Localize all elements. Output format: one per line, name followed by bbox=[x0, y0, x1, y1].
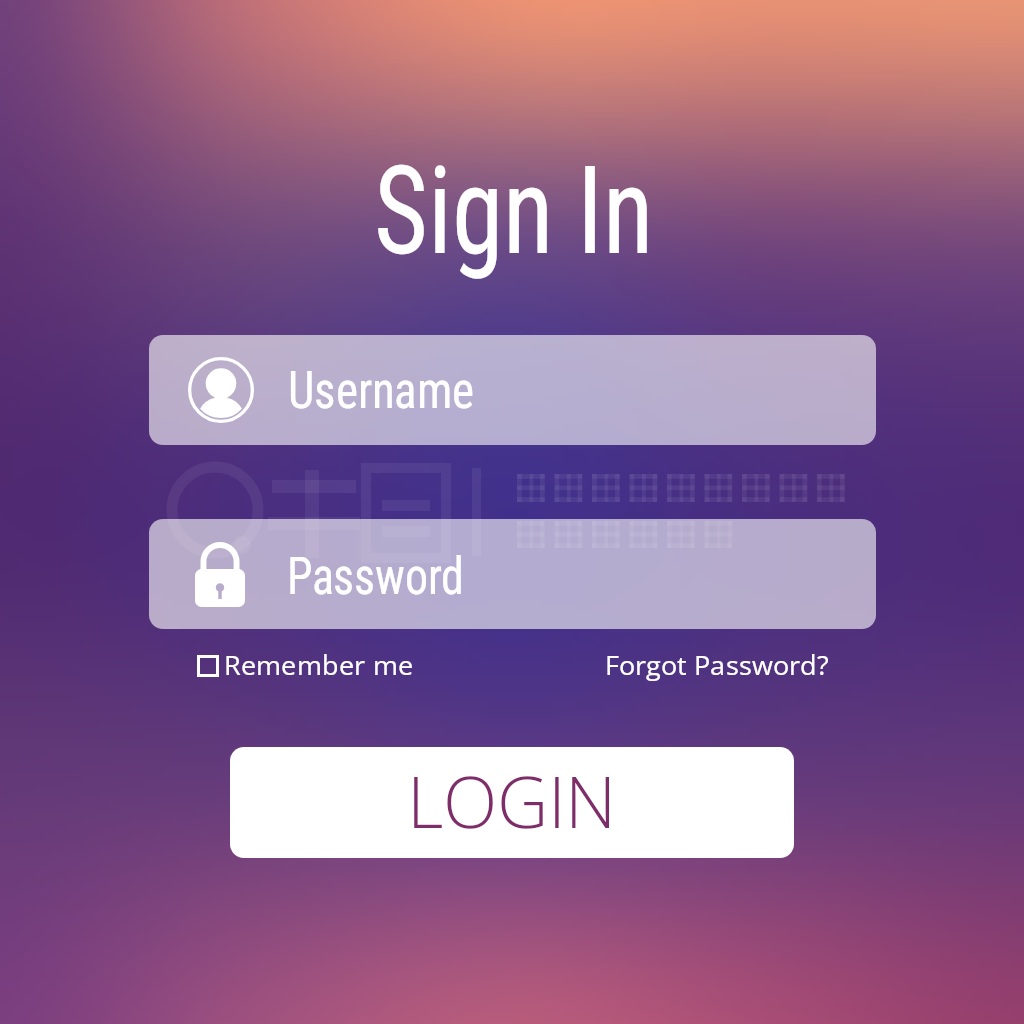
button[interactable]: Password field bbox=[149, 519, 876, 629]
button[interactable]: Remember me bbox=[190, 646, 422, 684]
button[interactable]: Username field bbox=[149, 335, 876, 445]
button[interactable]: Login bbox=[230, 747, 794, 858]
button[interactable]: Forgot Password? bbox=[597, 646, 837, 684]
